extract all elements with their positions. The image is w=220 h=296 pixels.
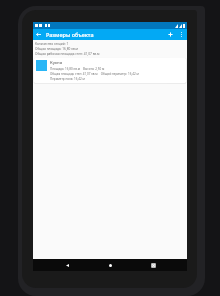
staticText: Кухня (50, 60, 63, 66)
staticText: Размеры объекта (46, 31, 94, 38)
button[interactable]: Recent apps (149, 261, 157, 269)
button[interactable]: Home (106, 261, 114, 269)
staticText: Общая площадь стен: 41,07 кв.м Общий пер… (50, 72, 139, 76)
button[interactable]: Back (63, 261, 71, 269)
staticText: Количество секций: 1 (35, 42, 128, 46)
staticText: Периметр пола: 16,42 м (50, 77, 85, 81)
button[interactable]: More options (176, 29, 187, 40)
staticText: Общая площадь: 16,80 кв.м (35, 47, 140, 51)
button[interactable]: Navigate up (33, 29, 44, 40)
button[interactable]: Кухня (34, 58, 186, 83)
staticText: Общая рабочая площадь стен: 41,07 кв.м (35, 52, 170, 56)
staticText: Площадь: 16,80 кв.м Высота: 2,50 м (50, 67, 105, 71)
button[interactable]: Add (165, 29, 176, 40)
